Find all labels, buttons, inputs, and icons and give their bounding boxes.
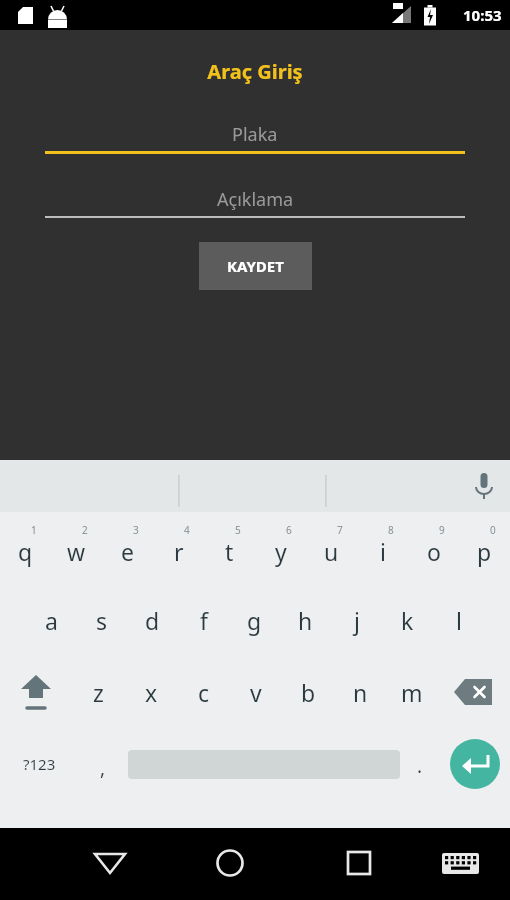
staticText: 4 (184, 523, 190, 537)
staticText: 10:53 (463, 5, 502, 25)
button[interactable]: Plaka (45, 119, 465, 149)
staticText: m (401, 677, 423, 708)
staticText: w (67, 536, 86, 567)
staticText: f (200, 605, 208, 636)
button[interactable]: 5 (204, 512, 255, 584)
button[interactable]: f (178, 584, 229, 656)
staticText: h (298, 605, 313, 636)
button[interactable]: Backspace (438, 656, 510, 728)
staticText: Araç Giriş (207, 58, 303, 85)
staticText: q (18, 536, 33, 567)
staticText: o (427, 536, 441, 567)
staticText: 9 (439, 523, 445, 537)
staticText: i (380, 536, 386, 567)
button[interactable]: a (26, 584, 76, 656)
staticText: y (275, 536, 287, 567)
staticText: e (121, 536, 134, 567)
button[interactable]: l (433, 584, 484, 656)
staticText: k (401, 605, 414, 636)
button[interactable]: Shift (0, 656, 72, 728)
button[interactable]: 7 (306, 512, 357, 584)
button[interactable]: Enter (440, 728, 510, 800)
button[interactable]: KAYDET (199, 242, 312, 290)
button[interactable]: n (334, 656, 386, 728)
button[interactable]: z (72, 656, 125, 728)
button[interactable]: 2 (51, 512, 102, 584)
button[interactable]: m (386, 656, 438, 728)
staticText: g (247, 605, 262, 636)
staticText: s (96, 605, 108, 636)
staticText: c (198, 677, 210, 708)
staticText: b (301, 677, 316, 708)
button[interactable]: x (125, 656, 178, 728)
staticText: 0 (490, 523, 496, 537)
button[interactable]: c (178, 656, 230, 728)
staticText: n (353, 677, 368, 708)
staticText: 6 (286, 523, 292, 537)
button[interactable]: ?123 (0, 728, 78, 800)
button[interactable]: s (76, 584, 127, 656)
button[interactable]: Recent apps (300, 828, 418, 900)
staticText: 3 (133, 523, 139, 537)
button[interactable]: Switch keyboard (418, 828, 510, 900)
staticText: 1 (31, 523, 37, 537)
button[interactable]: h (280, 584, 331, 656)
button[interactable]: Back (60, 828, 160, 900)
staticText: . (417, 753, 423, 779)
button[interactable]: 0 (459, 512, 510, 584)
staticText: j (354, 605, 360, 636)
button[interactable]: Voice input (458, 460, 510, 512)
button[interactable]: Home (160, 828, 300, 900)
staticText: 2 (82, 523, 88, 537)
staticText: z (93, 677, 104, 708)
button[interactable]: v (230, 656, 282, 728)
staticText: 5 (235, 523, 241, 537)
button[interactable]: 1 (0, 512, 51, 584)
staticText: Açıklama (217, 187, 294, 212)
button[interactable]: 4 (153, 512, 204, 584)
button[interactable]: . (400, 728, 440, 800)
staticText: d (145, 605, 160, 636)
button[interactable]: g (229, 584, 280, 656)
staticText: v (250, 677, 262, 708)
staticText: 7 (337, 523, 343, 537)
button[interactable]: 8 (357, 512, 408, 584)
button[interactable]: k (382, 584, 433, 656)
staticText: l (456, 605, 462, 636)
staticText: Plaka (232, 122, 278, 147)
button[interactable]: j (331, 584, 382, 656)
staticText: ?123 (23, 754, 56, 774)
button[interactable]: 6 (255, 512, 306, 584)
staticText: 8 (388, 523, 394, 537)
button[interactable]: 9 (408, 512, 459, 584)
button[interactable]: Açıklama (45, 184, 465, 214)
button[interactable]: d (127, 584, 178, 656)
staticText: a (45, 605, 58, 636)
staticText: , (100, 755, 106, 781)
button[interactable]: , (78, 728, 128, 800)
staticText: p (477, 536, 492, 567)
button[interactable]: Space (128, 728, 400, 800)
staticText: u (324, 536, 339, 567)
button[interactable]: 3 (102, 512, 153, 584)
staticText: t (225, 536, 234, 567)
button[interactable]: b (282, 656, 334, 728)
staticText: r (174, 536, 184, 567)
staticText: KAYDET (227, 256, 284, 276)
staticText: x (145, 677, 158, 708)
